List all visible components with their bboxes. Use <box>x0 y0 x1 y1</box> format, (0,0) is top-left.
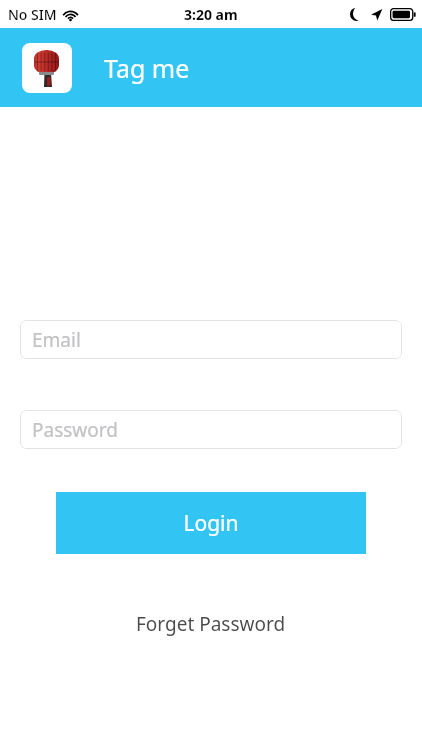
staticText: 3:20 am <box>184 5 238 24</box>
staticText: Tag me <box>104 51 190 85</box>
button[interactable]: App icon <box>22 43 72 93</box>
staticText: No SIM <box>8 5 57 24</box>
staticText: Email <box>32 327 81 353</box>
button[interactable]: Login <box>56 492 366 554</box>
staticText: Password <box>32 417 118 443</box>
button[interactable]: Forget Password <box>124 607 298 641</box>
staticText: Login <box>183 509 239 538</box>
staticText: Forget Password <box>136 611 286 637</box>
button[interactable]: Password <box>20 410 402 449</box>
button[interactable]: Email <box>20 320 402 359</box>
